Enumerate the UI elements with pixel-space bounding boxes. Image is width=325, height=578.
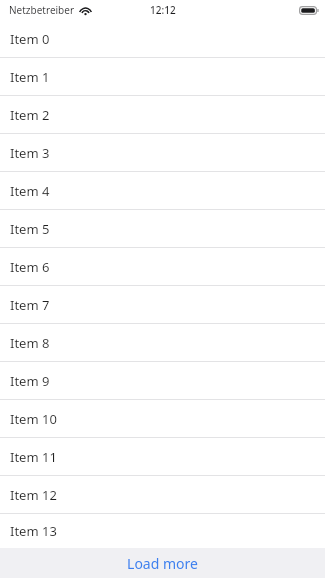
button[interactable]: Item 12	[0, 476, 325, 514]
button[interactable]: Item 0	[0, 20, 325, 58]
staticText: Item 5	[10, 220, 50, 238]
staticText: Item 8	[10, 334, 50, 352]
button[interactable]: Item 10	[0, 400, 325, 438]
button[interactable]: Item 7	[0, 286, 325, 324]
button[interactable]: Load more	[0, 548, 325, 578]
staticText: Item 13	[10, 522, 57, 540]
button[interactable]: Item 8	[0, 324, 325, 362]
button[interactable]: Item 6	[0, 248, 325, 286]
staticText: Item 1	[10, 68, 50, 86]
staticText: Item 0	[10, 30, 50, 48]
staticText: Item 10	[10, 410, 57, 428]
button[interactable]: Item 3	[0, 134, 325, 172]
staticText: Item 6	[10, 258, 50, 276]
staticText: Item 12	[10, 486, 57, 504]
button[interactable]: Item 5	[0, 210, 325, 248]
staticText: Item 7	[10, 296, 50, 314]
button[interactable]: Item 9	[0, 362, 325, 400]
button[interactable]: Item 1	[0, 58, 325, 96]
button[interactable]: Item 11	[0, 438, 325, 476]
staticText: Item 4	[10, 182, 50, 200]
other: Battery	[299, 6, 319, 15]
staticText: Item 3	[10, 144, 50, 162]
staticText: Load more	[127, 554, 198, 573]
button[interactable]: Item 13	[0, 514, 325, 548]
button[interactable]: Item 4	[0, 172, 325, 210]
staticText: Netzbetreiber	[9, 3, 75, 17]
staticText: Item 2	[10, 106, 50, 124]
staticText: Item 11	[10, 448, 57, 466]
staticText: 12:12	[150, 3, 176, 17]
button[interactable]: Item 2	[0, 96, 325, 134]
staticText: Item 9	[10, 372, 50, 390]
